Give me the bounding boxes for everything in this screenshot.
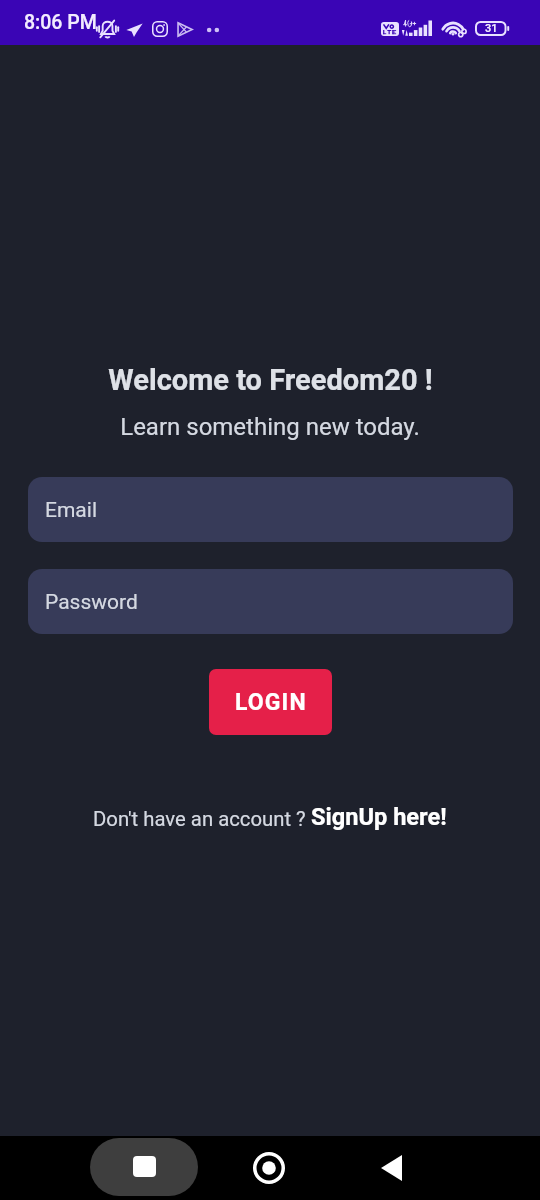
button[interactable]: Back	[369, 1145, 414, 1190]
staticText: Email	[45, 498, 97, 523]
staticText: Don't have an account ?	[93, 807, 311, 831]
staticText: Learn something new today.	[120, 413, 420, 441]
staticText: SignUp here!	[311, 803, 447, 831]
staticText: Welcome to Freedom20 !	[108, 363, 433, 397]
button[interactable]: SignUp here!	[311, 803, 447, 831]
staticText: LOGIN	[235, 689, 307, 716]
staticText: 31	[485, 22, 498, 35]
staticText: Password	[45, 590, 138, 615]
button[interactable]: Password	[28, 569, 513, 634]
button[interactable]: Email	[28, 477, 513, 542]
button[interactable]: Recents	[90, 1138, 198, 1196]
button[interactable]: LOGIN	[209, 669, 332, 735]
button[interactable]: Home	[246, 1145, 291, 1190]
staticText: 8:06 PM	[24, 11, 97, 34]
